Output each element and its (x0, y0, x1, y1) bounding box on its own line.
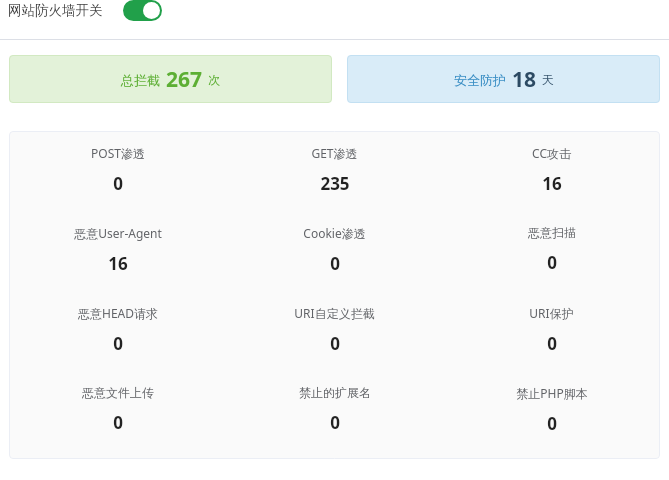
staticText: 恶意User-Agent (74, 225, 162, 241)
button[interactable]: GET渗透 (226, 145, 443, 195)
staticText: 0 (547, 251, 557, 274)
button[interactable]: 恶意扫描 (443, 225, 660, 274)
staticText: URI自定义拦截 (294, 305, 375, 321)
staticText: 0 (330, 252, 340, 275)
staticText: 恶意扫描 (528, 225, 576, 240)
staticText: 总拦截 (121, 72, 160, 88)
button[interactable]: 恶意文件上传 (9, 385, 226, 434)
staticText: 16 (542, 172, 562, 195)
staticText: 安全防护 (454, 72, 506, 88)
staticText: 0 (547, 332, 557, 355)
button[interactable]: CC攻击 (443, 145, 660, 195)
staticText: 恶意文件上传 (82, 385, 154, 400)
button[interactable]: 网站防火墙开关 toggle, on (123, 0, 162, 21)
button[interactable]: URI自定义拦截 (226, 305, 443, 355)
button[interactable]: 总拦截 (9, 55, 332, 103)
staticText: 18 (512, 65, 537, 94)
staticText: 0 (113, 411, 123, 434)
staticText: POST渗透 (91, 145, 145, 161)
button[interactable]: Cookie渗透 (226, 225, 443, 275)
button[interactable]: URI保护 (443, 305, 660, 355)
button[interactable]: POST渗透 (9, 145, 226, 195)
staticText: 0 (330, 332, 340, 355)
button[interactable]: 恶意User-Agent (9, 225, 226, 275)
staticText: 禁止PHP脚本 (516, 385, 588, 401)
staticText: 天 (542, 72, 554, 87)
button[interactable]: 安全防护 (347, 55, 660, 103)
staticText: 0 (547, 412, 557, 435)
staticText: 235 (320, 172, 350, 195)
staticText: 次 (208, 72, 220, 87)
button[interactable]: 恶意HEAD请求 (9, 305, 226, 355)
staticText: 禁止的扩展名 (299, 385, 371, 400)
staticText: Cookie渗透 (303, 225, 366, 241)
staticText: 0 (330, 411, 340, 434)
staticText: 16 (108, 252, 128, 275)
staticText: 网站防火墙开关 (8, 2, 103, 19)
staticText: 0 (113, 172, 123, 195)
staticText: CC攻击 (532, 145, 571, 161)
button[interactable]: 禁止的扩展名 (226, 385, 443, 434)
staticText: 267 (166, 65, 203, 94)
staticText: GET渗透 (311, 145, 358, 161)
button[interactable]: 禁止PHP脚本 (443, 385, 660, 435)
staticText: 0 (113, 332, 123, 355)
staticText: URI保护 (529, 305, 574, 321)
staticText: 恶意HEAD请求 (78, 305, 158, 321)
